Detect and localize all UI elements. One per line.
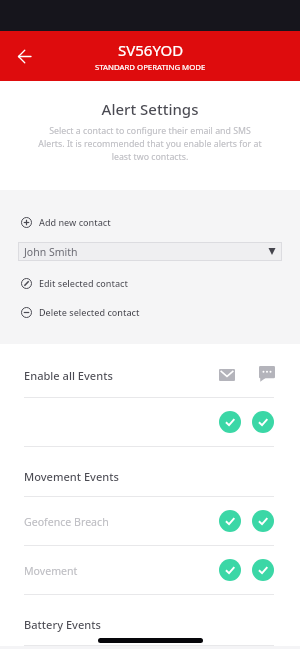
staticText: John Smith bbox=[24, 245, 78, 259]
button[interactable]: Back bbox=[11, 43, 37, 69]
button[interactable]: SMS alerts bbox=[256, 363, 278, 385]
button[interactable]: Add new contact bbox=[21, 215, 282, 229]
staticText: SV56YOD bbox=[118, 40, 184, 60]
button[interactable]: Toggle bbox=[252, 510, 274, 532]
button[interactable]: Email alerts bbox=[216, 364, 238, 386]
staticText: Movement Events bbox=[24, 469, 119, 484]
staticText: Battery Events bbox=[24, 617, 101, 632]
button[interactable]: Edit selected contact bbox=[21, 276, 282, 290]
staticText: STANDARD OPERATING MODE bbox=[95, 62, 206, 73]
staticText: Edit selected contact bbox=[39, 277, 128, 289]
button[interactable]: Toggle bbox=[252, 559, 274, 581]
staticText: Add new contact bbox=[39, 216, 111, 228]
button[interactable]: Toggle bbox=[219, 510, 241, 532]
button[interactable]: Toggle bbox=[252, 411, 274, 433]
button[interactable]: Delete selected contact bbox=[21, 305, 282, 319]
staticText: Select a contact to configure their emai… bbox=[36, 125, 264, 163]
button[interactable]: John Smith bbox=[18, 242, 282, 261]
staticText: Movement bbox=[24, 564, 78, 578]
button[interactable]: Toggle bbox=[219, 559, 241, 581]
button[interactable]: Toggle bbox=[219, 411, 241, 433]
staticText: Alert Settings bbox=[0, 99, 300, 119]
staticText: Enable all Events bbox=[24, 368, 113, 383]
staticText: Geofence Breach bbox=[24, 515, 109, 529]
staticText: Delete selected contact bbox=[39, 306, 140, 318]
